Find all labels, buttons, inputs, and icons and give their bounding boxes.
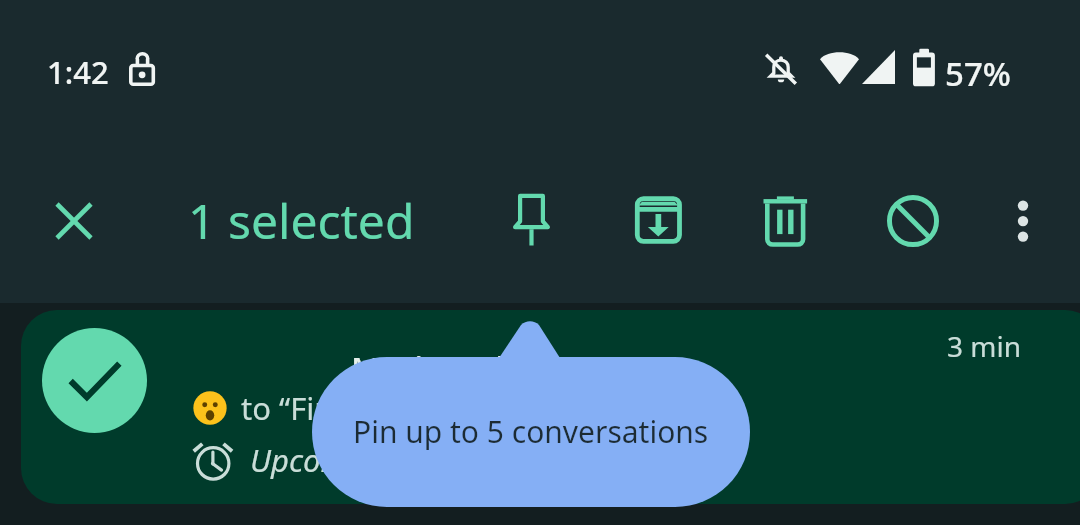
staticText: Pin up to 5 conversations bbox=[353, 411, 709, 452]
staticText: 1 selected bbox=[188, 188, 415, 253]
button[interactable]: Pin up to 5 conversations bbox=[312, 357, 750, 507]
staticText: 3 min bbox=[947, 327, 1022, 365]
button[interactable]: Archive bbox=[621, 184, 694, 257]
button[interactable]: Marie Dubois bbox=[21, 310, 1080, 504]
staticText: to “Final draft” bbox=[241, 387, 450, 429]
staticText: 1:42 bbox=[47, 51, 109, 93]
button[interactable]: Pin bbox=[494, 184, 567, 257]
button[interactable]: Close selection bbox=[37, 184, 110, 257]
button[interactable]: Delete bbox=[748, 184, 821, 257]
button[interactable]: More options bbox=[986, 184, 1059, 257]
staticText: 57% bbox=[945, 51, 1011, 96]
button[interactable]: Block bbox=[876, 184, 949, 257]
staticText: Upcoming bbox=[250, 439, 392, 481]
staticText: Marie Dubois bbox=[351, 346, 561, 391]
